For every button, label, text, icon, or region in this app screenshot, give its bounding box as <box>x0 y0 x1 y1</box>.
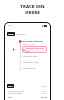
button[interactable]: Forventet levering i dag <box>22 46 47 53</box>
staticText: KURV <box>8 85 13 87</box>
button[interactable]: Cowboybukser Slim <box>8 90 47 92</box>
staticText: Afsendt fra lager <box>23 61 39 64</box>
staticText: 749 kr. <box>41 96 47 99</box>
button[interactable]: Afsendt fra lager <box>18 61 47 65</box>
button[interactable]: Pakket på lager <box>18 55 47 59</box>
staticText: ORDRE <box>8 33 14 35</box>
staticText: Cowboybukser Slim <box>8 90 25 92</box>
staticText: Bestilling modtaget <box>23 40 43 43</box>
button[interactable]: KURV <box>8 85 13 87</box>
staticText: Leveret til dig <box>23 67 36 70</box>
staticText: I alt <box>8 96 12 99</box>
button[interactable]: ORDRE <box>8 33 14 35</box>
staticText: I dag kl. 10:24 <box>23 43 35 45</box>
button[interactable]: Bestilling modtaget <box>18 40 47 45</box>
staticText: 1 stk. <box>42 90 47 92</box>
button[interactable]: Hvid t-shirt basic <box>8 92 47 94</box>
staticText: 9:41 <box>8 24 13 27</box>
staticText: Pakket på lager <box>23 55 38 58</box>
staticText: ORDRE <box>25 10 40 16</box>
staticText: Antal <box>42 85 47 87</box>
staticText: Hvid t-shirt basic <box>8 92 23 94</box>
button[interactable]: Leveret til dig <box>18 67 47 71</box>
staticText: #DK-20394 <box>16 33 26 35</box>
staticText: Forventet levering i dag <box>26 47 46 53</box>
staticText: 2 stk. <box>42 92 47 94</box>
staticText: TRACK DIN <box>20 4 45 10</box>
